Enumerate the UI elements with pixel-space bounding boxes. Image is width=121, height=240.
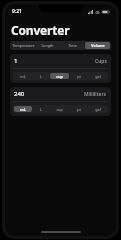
- button[interactable]: pt: [69, 73, 88, 79]
- staticText: cup: [56, 107, 63, 112]
- button[interactable]: Time: [60, 42, 85, 49]
- staticText: Volume: [91, 43, 105, 48]
- button[interactable]: mL: [14, 73, 32, 79]
- staticText: L: [40, 74, 42, 79]
- staticText: Temperature: [12, 43, 35, 48]
- button[interactable]: Volume: [85, 42, 110, 49]
- staticText: Milliliters: [84, 91, 107, 98]
- staticText: 9:21: [12, 8, 22, 15]
- staticText: Converter: [11, 22, 70, 38]
- staticText: gal: [95, 107, 101, 112]
- button[interactable]: Length: [35, 42, 60, 49]
- staticText: 1: [14, 57, 18, 65]
- staticText: pt: [77, 74, 81, 79]
- button[interactable]: gal: [88, 73, 107, 79]
- button[interactable]: Temperature: [11, 42, 35, 49]
- button[interactable]: 1: [10, 54, 111, 68]
- button[interactable]: mL: [14, 106, 32, 112]
- staticText: pt: [77, 107, 81, 112]
- button[interactable]: pt: [69, 106, 88, 112]
- staticText: cup: [56, 74, 63, 79]
- staticText: Time: [68, 43, 77, 48]
- staticText: Cups: [95, 58, 107, 65]
- staticText: Length: [41, 43, 54, 48]
- staticText: mL: [20, 107, 26, 112]
- staticText: mL: [20, 74, 26, 79]
- button[interactable]: gal: [88, 106, 107, 112]
- staticText: L: [40, 107, 42, 112]
- button[interactable]: 240: [10, 87, 111, 101]
- staticText: gal: [95, 74, 101, 79]
- button[interactable]: L: [32, 73, 50, 79]
- button[interactable]: L: [32, 106, 50, 112]
- button[interactable]: cup: [50, 106, 69, 112]
- button[interactable]: cup: [50, 73, 69, 79]
- staticText: 240: [14, 90, 25, 98]
